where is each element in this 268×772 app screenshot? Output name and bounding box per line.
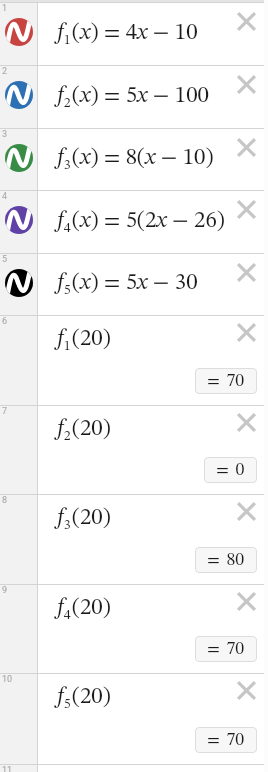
button[interactable]: 1: [0, 3, 264, 65]
staticText: f1 (20): [57, 327, 111, 354]
button[interactable]: Delete expression: [231, 675, 261, 705]
staticText: f1 (x) = 4x − 10: [57, 21, 198, 48]
staticText: f3 (x) = 8(x − 10): [57, 146, 214, 173]
button[interactable]: Delete expression: [231, 407, 261, 437]
staticText: 5: [2, 254, 8, 265]
staticText: 9: [2, 585, 8, 596]
button[interactable]: Delete expression: [231, 194, 261, 224]
staticText: 3: [2, 129, 8, 140]
staticText: 4: [2, 191, 8, 202]
button[interactable]: 5: [0, 254, 264, 315]
staticText: f5 (x) = 5x − 30: [57, 271, 198, 298]
button[interactable]: 9: [0, 585, 264, 673]
staticText: f2 (x) = 5x − 100: [57, 84, 209, 111]
button[interactable]: Delete expression: [231, 69, 261, 99]
staticText: 11: [2, 765, 13, 772]
staticText: f4 (20): [57, 596, 111, 623]
button[interactable]: 8: [0, 495, 264, 584]
staticText: = 70: [207, 640, 245, 658]
staticText: 2: [2, 66, 8, 77]
staticText: = 80: [207, 551, 245, 569]
staticText: 7: [2, 406, 8, 417]
staticText: f3 (20): [57, 506, 111, 533]
button[interactable]: 4: [0, 191, 264, 253]
button[interactable]: 2: [0, 66, 264, 128]
button[interactable]: Delete expression: [231, 257, 261, 287]
button[interactable]: Delete expression: [231, 496, 261, 526]
button[interactable]: Delete expression: [231, 317, 261, 347]
staticText: = 70: [207, 372, 245, 390]
staticText: f5 (20): [57, 685, 111, 712]
staticText: 6: [2, 316, 8, 327]
staticText: f2 (20): [57, 417, 111, 444]
button[interactable]: 6: [0, 316, 264, 405]
staticText: 8: [2, 495, 8, 506]
button[interactable]: 7: [0, 406, 264, 494]
staticText: 10: [2, 674, 13, 685]
button[interactable]: Delete expression: [231, 6, 261, 36]
staticText: = 0: [216, 461, 245, 479]
staticText: = 70: [207, 731, 245, 749]
button[interactable]: Delete expression: [231, 586, 261, 616]
staticText: 1: [2, 3, 8, 14]
button[interactable]: 10: [0, 674, 264, 764]
button[interactable]: Delete expression: [231, 132, 261, 162]
button[interactable]: 3: [0, 129, 264, 190]
staticText: f4 (x) = 5(2x − 26): [57, 209, 225, 236]
